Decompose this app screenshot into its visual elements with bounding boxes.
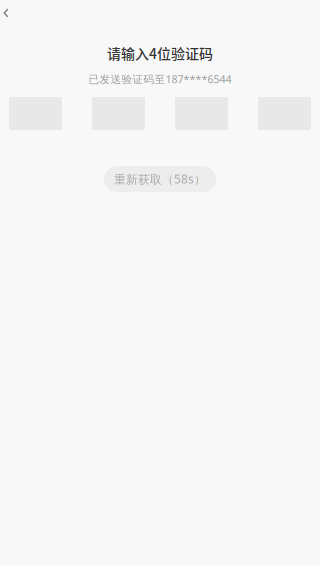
button[interactable]: Back: [0, 2, 22, 24]
button[interactable]: 重新获取（58s）: [104, 166, 216, 192]
staticText: 重新获取（58s）: [114, 171, 206, 187]
staticText: 请输入4位验证码: [107, 43, 213, 63]
staticText: 已发送验证码至187****6544: [88, 72, 231, 86]
